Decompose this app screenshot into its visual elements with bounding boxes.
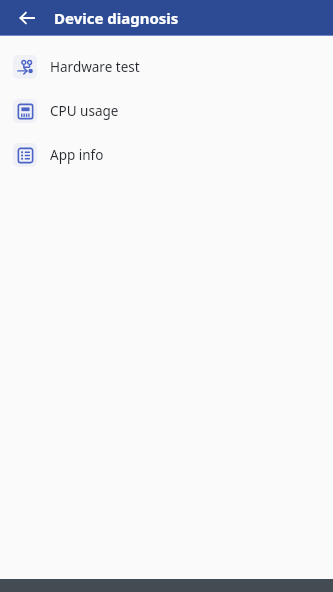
button[interactable]: Back (0, 0, 54, 36)
staticText: App info (50, 146, 104, 164)
staticText: Device diagnosis (54, 8, 179, 28)
button[interactable]: CPU usage (0, 89, 333, 133)
staticText: CPU usage (50, 102, 119, 120)
staticText: Hardware test (50, 58, 140, 76)
button[interactable]: App info (0, 133, 333, 177)
button[interactable]: Hardware test (0, 45, 333, 89)
